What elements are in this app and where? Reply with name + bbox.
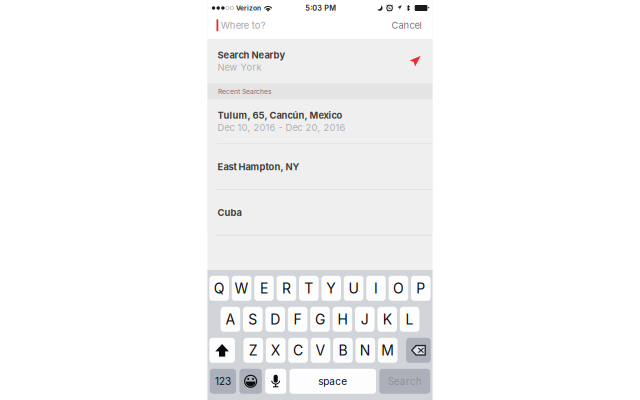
button[interactable]: 123 [210, 369, 236, 394]
button[interactable]: J [355, 307, 375, 332]
staticText: Cuba [217, 207, 241, 218]
button[interactable]: Q [209, 276, 229, 301]
button[interactable]: W [232, 276, 251, 301]
button[interactable]: S [243, 307, 263, 332]
button[interactable]: D [265, 307, 285, 332]
staticText: S [248, 311, 257, 328]
button[interactable]: R [277, 276, 296, 301]
staticText: East Hampton, NY [217, 161, 299, 172]
staticText: A [225, 311, 235, 328]
button[interactable]: Delete [406, 338, 431, 363]
staticText: Z [249, 342, 258, 359]
staticText: N [360, 342, 371, 359]
staticText: W [235, 280, 249, 297]
button[interactable]: G [310, 307, 330, 332]
button[interactable]: T [299, 276, 319, 301]
button[interactable]: C [288, 338, 308, 363]
button[interactable]: E [254, 276, 274, 301]
staticText: Search Nearby [217, 49, 285, 61]
staticText: D [270, 311, 280, 328]
button[interactable]: K [377, 307, 397, 332]
button[interactable]: I [366, 276, 386, 301]
staticText: I [374, 280, 378, 297]
staticText: Y [326, 280, 336, 297]
staticText: Dec 10, 2016 - Dec 20, 2016 [217, 122, 345, 133]
staticText: 5:03 PM [305, 4, 336, 12]
staticText: X [271, 342, 281, 359]
staticText: E [260, 280, 268, 297]
button[interactable]: Cuba [207, 190, 432, 235]
button[interactable]: A [221, 307, 240, 332]
button[interactable]: B [333, 338, 353, 363]
staticText: Verizon [236, 4, 261, 12]
staticText: P [416, 280, 425, 297]
button[interactable]: Z [243, 338, 263, 363]
button[interactable]: V [311, 338, 330, 363]
staticText: M [381, 342, 394, 359]
staticText: U [349, 280, 359, 297]
button[interactable]: P [411, 276, 431, 301]
button[interactable]: Cancel [387, 16, 425, 35]
button[interactable]: Emoji [239, 369, 262, 394]
staticText: Cancel [391, 20, 421, 31]
button[interactable]: N [355, 338, 375, 363]
staticText: Tulum, 65, Cancún, Mexico [217, 110, 342, 121]
button[interactable]: L [400, 307, 419, 332]
staticText: C [293, 342, 303, 359]
staticText: K [383, 311, 392, 328]
button[interactable]: space [289, 369, 376, 394]
staticText: Search [388, 375, 422, 387]
button[interactable]: H [333, 307, 352, 332]
staticText: V [315, 342, 325, 359]
staticText: space [318, 375, 347, 387]
button[interactable]: M [378, 338, 397, 363]
button[interactable]: Y [321, 276, 341, 301]
button[interactable]: Search [379, 369, 430, 394]
staticText: O [393, 280, 404, 297]
button[interactable]: Search Nearby [207, 39, 432, 83]
staticText: T [304, 280, 313, 297]
button[interactable]: X [266, 338, 285, 363]
button[interactable]: F [288, 307, 307, 332]
staticText: F [294, 311, 302, 328]
staticText: Q [214, 280, 225, 297]
staticText: Where to? [221, 20, 266, 31]
staticText: L [406, 311, 414, 328]
button[interactable]: East Hampton, NY [207, 144, 432, 189]
staticText: B [338, 342, 347, 359]
button[interactable]: Dictate [265, 369, 286, 394]
staticText: New York [217, 62, 261, 73]
button[interactable]: Shift [209, 338, 235, 363]
button[interactable]: O [389, 276, 408, 301]
staticText: G [315, 311, 325, 328]
staticText: 123 [215, 375, 231, 387]
staticText: R [282, 280, 291, 297]
staticText: H [337, 311, 347, 328]
staticText: J [361, 311, 369, 328]
button[interactable]: U [344, 276, 363, 301]
staticText: Recent Searches [218, 87, 272, 96]
button[interactable]: Tulum, 65, Cancún, Mexico [207, 99, 432, 144]
